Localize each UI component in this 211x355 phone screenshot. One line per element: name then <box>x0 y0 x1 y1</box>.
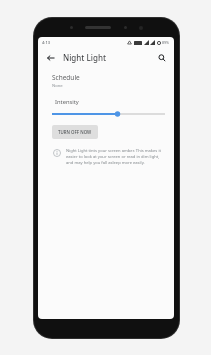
button[interactable]: Intensity slider <box>52 110 165 118</box>
staticText: None <box>52 83 63 89</box>
staticText: TURN OFF NOW <box>58 129 92 135</box>
button[interactable]: Search <box>154 50 169 65</box>
button[interactable]: TURN OFF NOW <box>52 125 98 139</box>
button[interactable]: Schedule <box>52 72 165 90</box>
staticText: Night Light tints your screen amber. Thi… <box>66 148 162 166</box>
staticText: 89% <box>162 40 170 45</box>
staticText: 4:13 <box>42 40 50 45</box>
button[interactable]: Back <box>43 50 58 65</box>
staticText: Intensity <box>55 98 79 106</box>
staticText: Schedule <box>52 73 80 82</box>
staticText: Night Light <box>63 52 106 63</box>
